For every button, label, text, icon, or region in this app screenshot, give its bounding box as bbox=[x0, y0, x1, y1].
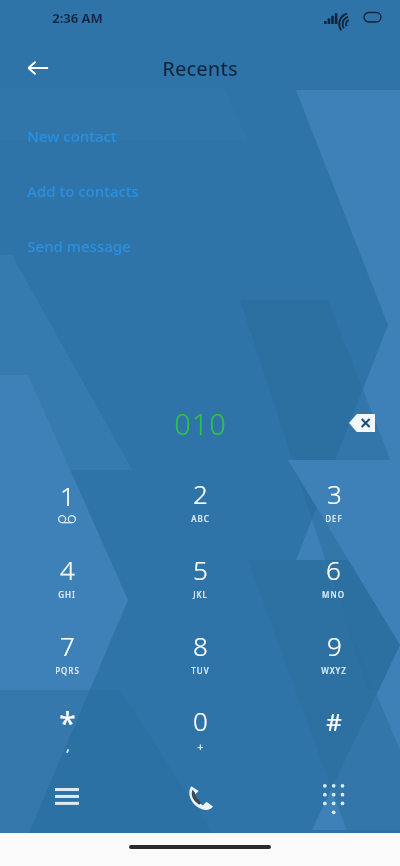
staticText: 010 bbox=[174, 404, 227, 443]
staticText: Send message bbox=[27, 236, 131, 256]
staticText: , bbox=[66, 736, 70, 755]
button[interactable]: Back bbox=[14, 44, 62, 92]
staticText: MNO bbox=[322, 589, 345, 600]
staticText: Add to contacts bbox=[27, 181, 139, 201]
staticText: 1 bbox=[60, 478, 75, 513]
button[interactable]: 0 bbox=[134, 690, 267, 766]
staticText: 2 bbox=[193, 476, 208, 511]
staticText: DEF bbox=[325, 513, 343, 524]
button[interactable]: New contact bbox=[0, 108, 400, 163]
staticText: JKL bbox=[193, 589, 208, 600]
staticText: 0 bbox=[193, 703, 208, 738]
staticText: + bbox=[197, 739, 204, 754]
staticText: 5 bbox=[193, 552, 208, 587]
button[interactable]: Send message bbox=[0, 218, 400, 273]
staticText: # bbox=[326, 705, 342, 738]
button[interactable]: 7 bbox=[0, 614, 134, 690]
button[interactable]: Add to contacts bbox=[0, 163, 400, 218]
staticText: 7 bbox=[60, 628, 75, 663]
button[interactable]: Pound bbox=[267, 690, 400, 766]
staticText: New contact bbox=[27, 126, 117, 146]
button[interactable]: Menu bbox=[0, 762, 134, 832]
button[interactable]: 4 bbox=[0, 538, 134, 614]
button[interactable]: 5 bbox=[134, 538, 267, 614]
staticText: 4 bbox=[60, 552, 75, 587]
staticText: 6 bbox=[326, 552, 341, 587]
button[interactable]: Backspace bbox=[340, 401, 384, 445]
staticText: PQRS bbox=[55, 665, 80, 676]
button[interactable]: Star bbox=[0, 690, 134, 766]
staticText: 8 bbox=[193, 628, 208, 663]
button[interactable]: 2 bbox=[134, 462, 267, 538]
button[interactable]: Call bbox=[134, 762, 267, 832]
staticText: TUV bbox=[191, 665, 210, 676]
button[interactable]: 9 bbox=[267, 614, 400, 690]
staticText: Recents bbox=[162, 55, 238, 82]
staticText: 3 bbox=[327, 476, 342, 511]
staticText: ABC bbox=[191, 513, 210, 524]
button[interactable]: Dialpad bbox=[267, 762, 400, 832]
button[interactable]: 8 bbox=[134, 614, 267, 690]
staticText: 9 bbox=[327, 628, 342, 663]
staticText: GHI bbox=[58, 589, 76, 600]
button[interactable]: 3 bbox=[267, 462, 400, 538]
staticText: * bbox=[59, 702, 76, 743]
button[interactable]: 6 bbox=[267, 538, 400, 614]
staticText: WXYZ bbox=[321, 665, 347, 676]
button[interactable]: 1 bbox=[0, 462, 134, 538]
staticText: 2:36 AM bbox=[52, 9, 103, 27]
